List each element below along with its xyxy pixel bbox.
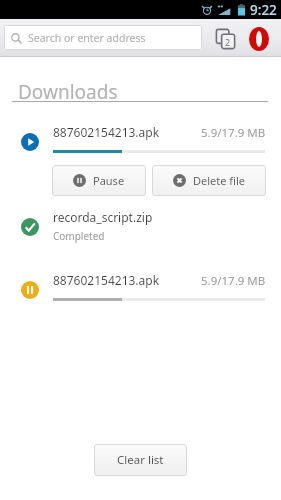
- button[interactable]: Pause: [52, 165, 146, 196]
- button[interactable]: 887602154213.apk: [0, 268, 281, 305]
- button[interactable]: Tabs, 2 open: [212, 26, 238, 52]
- staticText: 5.9/17.9 MB: [201, 273, 266, 289]
- button[interactable]: Search or enter address: [4, 25, 202, 50]
- button[interactable]: 887602154213.apk: [0, 120, 281, 157]
- staticText: Pause: [93, 173, 125, 188]
- button[interactable]: Opera menu: [245, 25, 273, 53]
- staticText: Completed: [53, 229, 105, 243]
- button[interactable]: Clear list: [94, 444, 187, 476]
- staticText: 5.9/17.9 MB: [201, 125, 266, 141]
- staticText: 9:22: [250, 1, 277, 19]
- staticText: Search or enter address: [28, 31, 146, 45]
- staticText: Clear list: [117, 452, 164, 468]
- staticText: Delete file: [193, 173, 245, 188]
- staticText: 2: [225, 36, 231, 48]
- staticText: 887602154213.apk: [53, 124, 160, 140]
- button[interactable]: recorda_script.zip: [0, 205, 281, 242]
- staticText: recorda_script.zip: [53, 209, 153, 225]
- staticText: Downloads: [18, 79, 118, 105]
- button[interactable]: Delete file: [152, 165, 266, 196]
- staticText: 887602154213.apk: [53, 272, 160, 288]
